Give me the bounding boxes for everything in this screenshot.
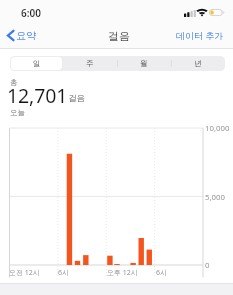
- staticText: 12,701: [7, 82, 68, 109]
- button[interactable]: 월: [118, 57, 170, 70]
- staticText: 6시: [156, 268, 168, 278]
- staticText: 일: [33, 59, 41, 68]
- button[interactable]: 일: [11, 57, 62, 70]
- staticText: 걸음: [108, 29, 130, 43]
- staticText: 주: [86, 59, 94, 68]
- staticText: 6:00: [21, 6, 41, 20]
- staticText: 오늘: [10, 108, 25, 117]
- staticText: 오후 12시: [107, 268, 138, 278]
- staticText: 데이터 추가: [176, 29, 224, 41]
- staticText: 년: [194, 59, 202, 68]
- button[interactable]: 주: [64, 57, 116, 70]
- button[interactable]: 데이터 추가: [172, 25, 228, 45]
- staticText: 10,000: [205, 123, 230, 134]
- button[interactable]: 년: [172, 57, 224, 70]
- staticText: 총: [10, 78, 18, 87]
- button[interactable]: 요약: [4, 25, 41, 46]
- staticText: 걸음: [68, 93, 85, 104]
- staticText: 6시: [58, 268, 70, 278]
- staticText: 0: [205, 260, 210, 271]
- staticText: 월: [140, 59, 148, 68]
- staticText: 요약: [16, 29, 36, 42]
- staticText: 오전 12시: [9, 268, 40, 278]
- staticText: 5,000: [205, 192, 225, 203]
